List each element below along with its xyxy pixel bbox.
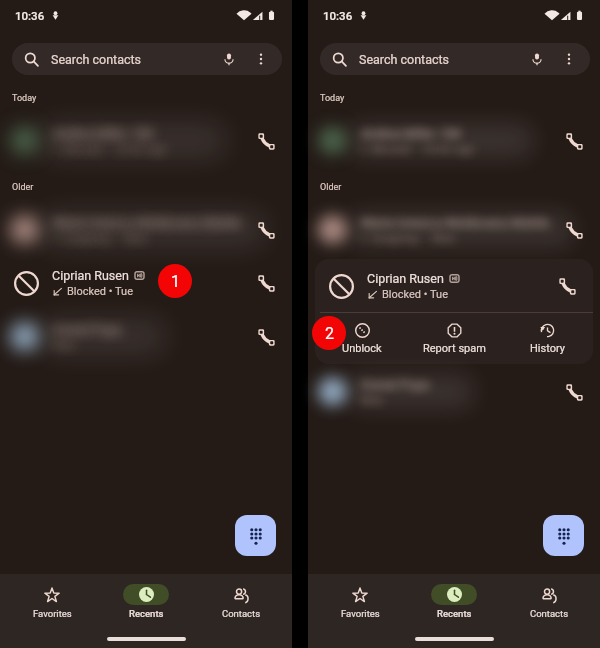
button[interactable]: Search contacts — [12, 43, 282, 75]
button[interactable]: Call — [248, 319, 284, 355]
button[interactable]: Report spam — [408, 319, 500, 359]
staticText: History — [530, 342, 565, 355]
staticText: Favorites — [33, 608, 72, 619]
staticText: Report spam — [423, 342, 486, 355]
button[interactable]: Favorites — [9, 584, 95, 619]
button[interactable]: History — [501, 319, 593, 359]
button[interactable]: Call — [0, 310, 292, 363]
staticText: Favorites — [341, 608, 380, 619]
staticText: Contacts — [222, 608, 261, 619]
staticText: Contacts — [530, 608, 569, 619]
staticText: 1 — [171, 272, 180, 291]
button[interactable]: Ciprian Rusen — [0, 256, 292, 309]
staticText: Blocked • Tue — [382, 288, 448, 301]
button[interactable]: Call — [556, 374, 592, 410]
staticText: Search contacts — [51, 52, 142, 67]
staticText: 2 — [325, 324, 334, 343]
staticText: 10:36 — [15, 9, 45, 22]
staticText: Older — [12, 182, 34, 193]
button[interactable]: Open dialpad — [543, 515, 584, 556]
button[interactable]: Recents — [411, 584, 497, 619]
staticText: Older — [320, 182, 342, 193]
button[interactable]: Call — [0, 203, 292, 256]
staticText: Today — [12, 93, 37, 104]
button[interactable]: Recents — [103, 584, 189, 619]
staticText: Recents — [437, 608, 472, 619]
staticText: Recents — [129, 608, 164, 619]
staticText: 10:36 — [323, 9, 353, 22]
button[interactable]: Search contacts — [320, 43, 590, 75]
staticText: Ciprian Rusen — [52, 268, 129, 283]
staticText: Today — [320, 93, 345, 104]
button[interactable]: Ciprian Rusen — [315, 259, 593, 312]
button[interactable]: Call — [0, 114, 292, 167]
button[interactable]: Favorites — [317, 584, 403, 619]
button[interactable]: Call — [308, 114, 600, 167]
button[interactable]: Call — [308, 365, 600, 418]
button[interactable]: Contacts — [506, 584, 592, 619]
button[interactable]: Contacts — [198, 584, 284, 619]
staticText: Blocked • Tue — [67, 285, 133, 298]
button[interactable]: Call — [248, 265, 284, 301]
staticText: Search contacts — [359, 52, 450, 67]
button[interactable]: Call — [556, 123, 592, 159]
staticText: Ciprian Rusen — [367, 271, 444, 286]
button[interactable]: Call — [308, 203, 600, 256]
button[interactable]: Unblock — [316, 319, 408, 359]
staticText: Unblock — [342, 342, 382, 355]
button[interactable]: Call — [248, 123, 284, 159]
button[interactable]: Call — [549, 268, 585, 304]
button[interactable]: Open dialpad — [235, 515, 276, 556]
button[interactable]: Call — [248, 212, 284, 248]
button[interactable]: Call — [556, 212, 592, 248]
